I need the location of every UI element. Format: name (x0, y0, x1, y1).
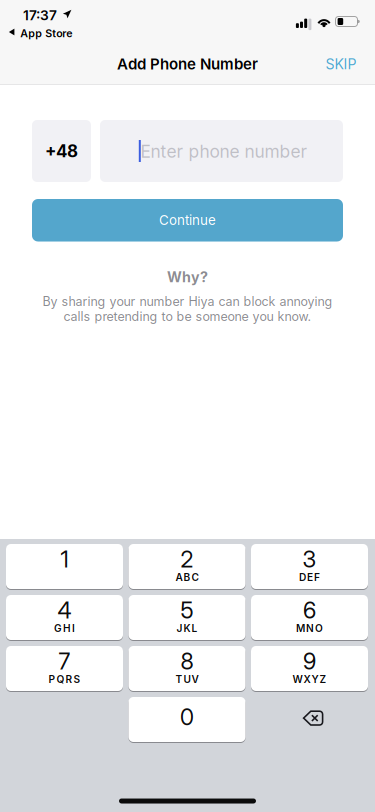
staticText: A B C (175, 571, 198, 584)
staticText: Enter phone number (140, 141, 307, 162)
staticText: 4 (57, 596, 71, 624)
staticText: 7 (58, 647, 70, 675)
button[interactable]: 0 (128, 697, 245, 742)
button[interactable]: Delete (251, 697, 368, 742)
staticText: 5 (180, 596, 193, 624)
button[interactable]: Enter phone number (100, 120, 343, 182)
staticText: 17:37 (23, 7, 57, 24)
staticText: 9 (303, 647, 316, 675)
staticText: By sharing your number Hiya can block an… (42, 294, 332, 309)
button[interactable]: Continue (32, 199, 343, 241)
button[interactable]: 2 (128, 544, 245, 589)
staticText: Why? (167, 268, 208, 286)
button[interactable]: 6 (251, 595, 368, 640)
staticText: Continue (159, 212, 216, 228)
staticText: Add Phone Number (117, 55, 258, 73)
button[interactable]: 4 (6, 595, 123, 640)
button[interactable]: SKIP (312, 47, 370, 81)
staticText: App Store (20, 27, 72, 40)
staticText: SKIP (325, 55, 356, 72)
button[interactable]: 5 (128, 595, 245, 640)
button[interactable]: 3 (251, 544, 368, 589)
button[interactable]: 1 (6, 544, 123, 589)
staticText: 8 (180, 647, 193, 675)
staticText: J K L (176, 622, 197, 635)
staticText: P Q R S (48, 673, 80, 686)
button[interactable]: +48 (32, 120, 91, 182)
staticText: G H I (54, 622, 75, 635)
staticText: 2 (180, 545, 193, 573)
staticText: T U V (175, 673, 198, 686)
staticText: 1 (60, 545, 68, 573)
staticText: M N O (296, 622, 323, 635)
staticText: W X Y Z (292, 673, 326, 686)
button[interactable]: 7 (6, 646, 123, 691)
staticText: calls pretending to be someone you know. (63, 309, 311, 324)
button[interactable]: 9 (251, 646, 368, 691)
staticText: +48 (45, 141, 78, 161)
staticText: 0 (180, 703, 194, 731)
staticText: D E F (299, 571, 320, 584)
staticText: 6 (303, 596, 316, 624)
staticText: 3 (302, 545, 316, 573)
button[interactable]: 8 (128, 646, 245, 691)
